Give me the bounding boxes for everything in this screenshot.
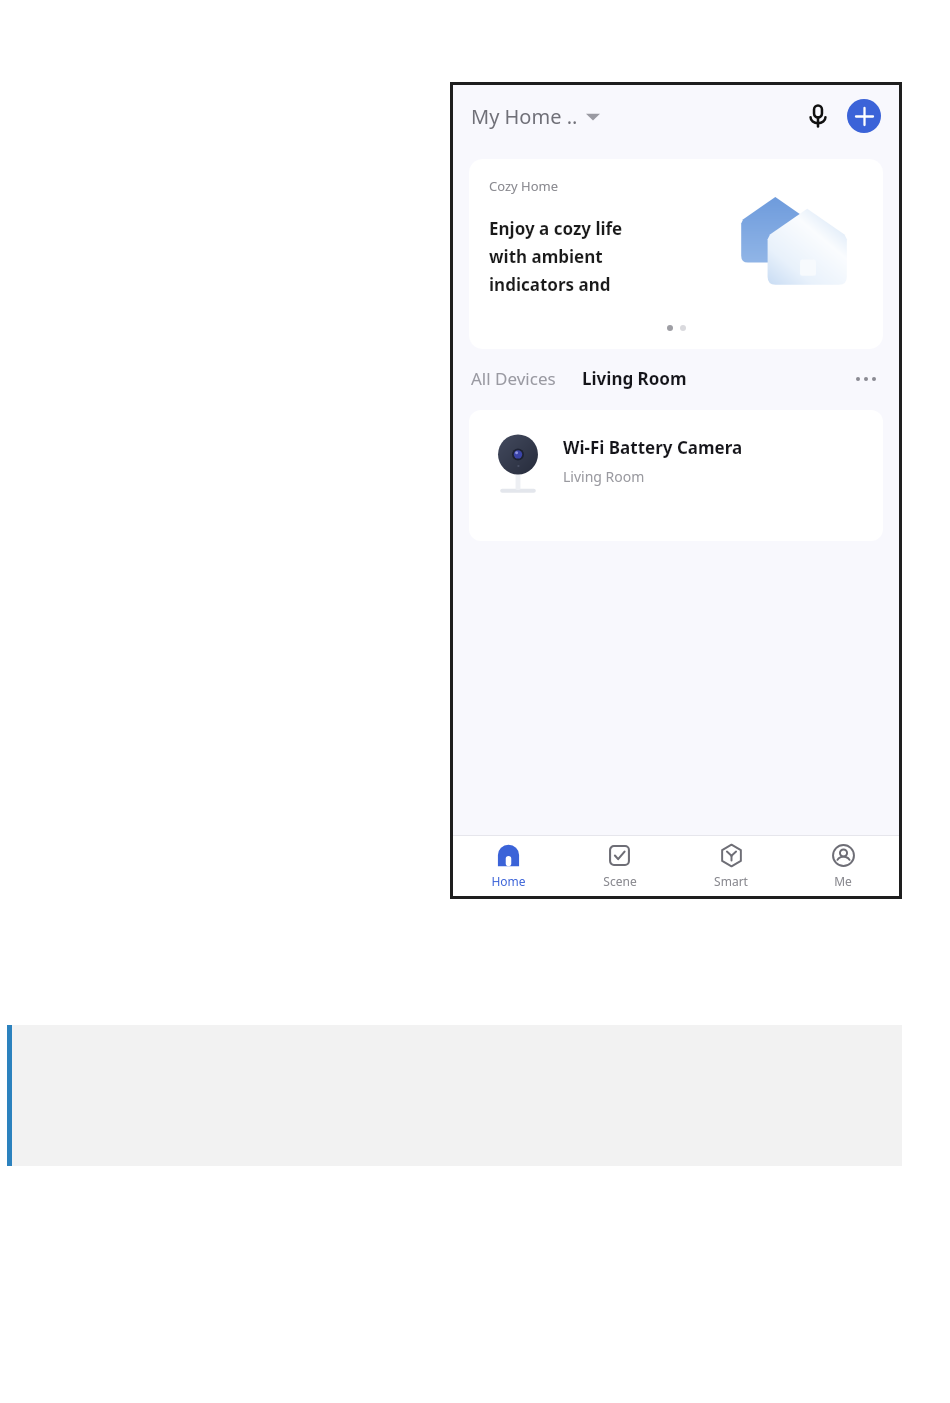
button[interactable]: All Devices (471, 363, 556, 394)
button[interactable]: Scene (564, 836, 675, 896)
staticText: Scene (603, 873, 637, 888)
staticText: Wi-Fi Battery Camera (563, 436, 743, 459)
button[interactable]: Home (453, 836, 564, 896)
button[interactable]: Living Room (582, 363, 687, 394)
staticText: All Devices (471, 367, 556, 390)
staticText: Me (834, 873, 852, 888)
button[interactable]: Me (787, 836, 899, 896)
button[interactable]: My Home .. (471, 103, 600, 130)
button[interactable]: More options (851, 364, 881, 394)
button[interactable]: Cozy Home (469, 159, 883, 349)
staticText: Living Room (582, 367, 687, 390)
staticText: Living Room (563, 467, 645, 486)
button[interactable]: Wi-Fi Battery Camera (469, 410, 883, 541)
button[interactable]: Voice (799, 97, 837, 135)
staticText: indicators and (489, 273, 611, 296)
staticText: with ambient (489, 245, 603, 268)
staticText: Smart (714, 873, 748, 888)
staticText: Home (491, 873, 526, 888)
button[interactable]: Add device (847, 99, 881, 133)
button[interactable]: Smart (675, 836, 787, 896)
staticText: My Home .. (471, 103, 578, 130)
staticText: Enjoy a cozy life (489, 217, 623, 240)
staticText: Cozy Home (489, 177, 559, 195)
